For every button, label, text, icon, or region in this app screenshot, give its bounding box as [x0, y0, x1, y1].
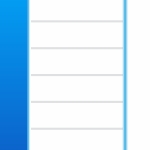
- button[interactable]: Lined note page: [0, 0, 150, 150]
